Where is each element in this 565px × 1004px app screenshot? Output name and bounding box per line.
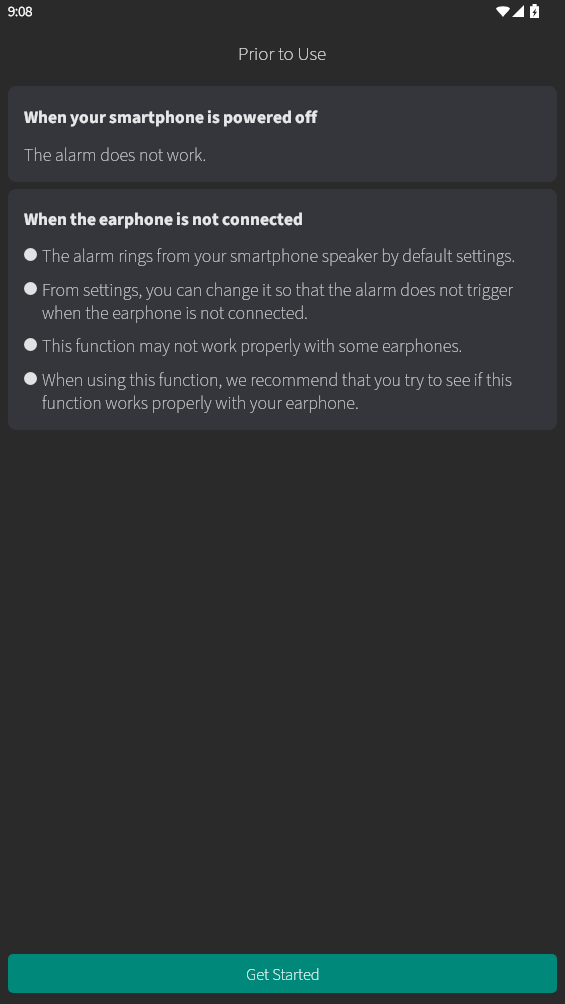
- staticText: Get Started: [246, 963, 320, 986]
- staticText: 9:08: [8, 1, 33, 22]
- staticText: This function may not work properly with…: [42, 334, 463, 360]
- staticText: The alarm does not work.: [24, 143, 207, 169]
- staticText: From settings, you can change it so that…: [42, 278, 541, 326]
- button[interactable]: Get Started: [8, 954, 557, 993]
- staticText: When using this function, we recommend t…: [42, 368, 541, 416]
- staticText: Prior to Use: [238, 41, 327, 68]
- staticText: The alarm rings from your smartphone spe…: [42, 244, 516, 270]
